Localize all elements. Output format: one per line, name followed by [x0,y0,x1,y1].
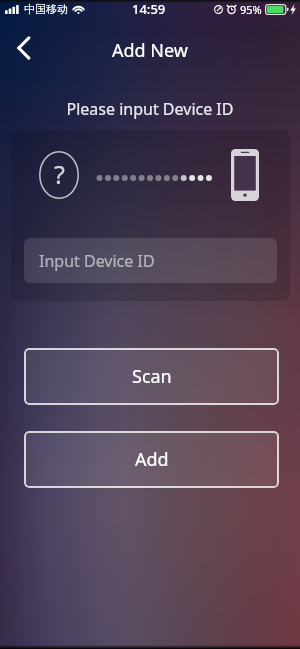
staticText: 14:59 [132,0,166,18]
staticText: Add [135,447,169,472]
staticText: ? [54,157,65,191]
staticText: 中国移动 [24,2,68,16]
button[interactable]: Add [24,431,279,488]
staticText: 95% [240,2,262,17]
staticText: Please input Device ID [0,98,300,120]
button[interactable]: Input Device ID [24,238,277,283]
button[interactable]: Back [0,26,44,70]
button[interactable]: Scan [24,348,279,405]
staticText: Scan [132,364,172,389]
staticText: Input Device ID [39,250,155,272]
staticText: Add New [0,38,300,63]
